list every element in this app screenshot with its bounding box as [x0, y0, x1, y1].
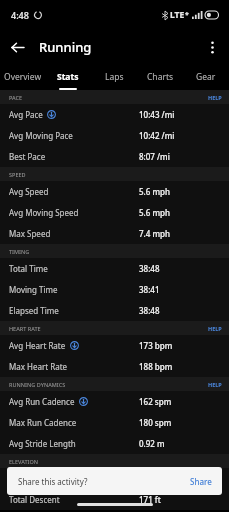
staticText: Avg Stride Length: [9, 438, 76, 449]
button[interactable]: Share: [190, 476, 212, 487]
staticText: PACE: [9, 94, 23, 101]
staticText: 8:07 /mi: [139, 151, 170, 162]
staticText: Avg Run Cadence: [9, 396, 75, 407]
staticText: Moving Time: [9, 284, 58, 295]
staticText: Overview: [4, 71, 42, 83]
staticText: 10:43 /mi: [139, 109, 175, 120]
staticText: Max Run Cadence: [9, 417, 77, 428]
button[interactable]: Elapsed Time: [0, 300, 229, 321]
staticText: 4:48: [11, 9, 29, 21]
staticText: HELP: [208, 94, 222, 101]
staticText: Laps: [105, 71, 124, 83]
staticText: ELEVATION: [9, 458, 39, 465]
staticText: *: [185, 10, 189, 20]
button[interactable]: HELP: [208, 381, 222, 388]
staticText: Gear: [196, 71, 216, 83]
staticText: RUNNING DYNAMICS: [9, 381, 66, 388]
staticText: 171 ft: [139, 494, 161, 505]
staticText: 38:41: [139, 284, 160, 295]
staticText: 38:48: [139, 305, 160, 316]
button[interactable]: Laps: [91, 64, 137, 90]
staticText: Total Descent: [9, 494, 60, 505]
button[interactable]: Back: [4, 34, 30, 60]
staticText: SPEED: [9, 171, 26, 178]
staticText: Total Ascent: [9, 473, 55, 484]
button[interactable]: Total Time: [0, 258, 229, 279]
staticText: Elapsed Time: [9, 305, 59, 316]
button[interactable]: Overview: [0, 64, 45, 90]
button[interactable]: Avg Heart Rate: [0, 335, 229, 356]
staticText: Avg Moving Speed: [9, 207, 79, 218]
staticText: Avg Speed: [9, 186, 49, 197]
staticText: LTE: [170, 9, 185, 21]
staticText: Avg Moving Pace: [9, 130, 73, 141]
staticText: 38:48: [139, 263, 160, 274]
staticText: 180 spm: [139, 417, 172, 428]
staticText: 5.6 mph: [139, 207, 170, 218]
staticText: 0.92 m: [139, 438, 165, 449]
staticText: 162 spm: [139, 396, 172, 407]
button[interactable]: HELP: [208, 94, 222, 101]
staticText: Max Speed: [9, 228, 51, 239]
staticText: 7.4 mph: [139, 228, 170, 239]
staticText: 173 bpm: [139, 340, 173, 351]
staticText: Avg Heart Rate: [9, 340, 66, 351]
button[interactable]: Share this activity?: [7, 467, 222, 495]
button[interactable]: Moving Time: [0, 279, 229, 300]
button[interactable]: Max Run Cadence: [0, 412, 229, 433]
staticText: HELP: [208, 381, 222, 388]
button[interactable]: Avg Pace: [0, 104, 229, 125]
staticText: 188 bpm: [139, 361, 173, 372]
button[interactable]: Avg Moving Speed: [0, 202, 229, 223]
other: Info: [70, 341, 79, 350]
button[interactable]: Charts: [137, 64, 183, 90]
button[interactable]: More options: [199, 34, 225, 60]
staticText: TIMING: [9, 248, 30, 255]
other: Info: [47, 110, 56, 119]
staticText: Running: [39, 38, 92, 56]
button[interactable]: Total Descent: [0, 489, 229, 510]
staticText: HEART RATE: [9, 325, 41, 332]
staticText: Charts: [147, 71, 174, 83]
staticText: Total Time: [9, 263, 48, 274]
button[interactable]: Avg Speed: [0, 181, 229, 202]
staticText: HELP: [208, 325, 222, 332]
button[interactable]: Max Speed: [0, 223, 229, 244]
button[interactable]: Avg Moving Pace: [0, 125, 229, 146]
button[interactable]: Max Heart Rate: [0, 356, 229, 377]
staticText: Share this activity?: [18, 476, 88, 487]
staticText: Share: [190, 476, 212, 487]
button[interactable]: HELP: [208, 325, 222, 332]
button[interactable]: Avg Run Cadence: [0, 391, 229, 412]
staticText: Stats: [57, 71, 79, 83]
staticText: 10:42 /mi: [139, 130, 175, 141]
staticText: Max Heart Rate: [9, 361, 68, 372]
other: Info: [79, 397, 88, 406]
button[interactable]: Total Ascent: [0, 468, 229, 489]
staticText: Best Pace: [9, 151, 46, 162]
button[interactable]: Stats: [45, 64, 91, 90]
staticText: Avg Pace: [9, 109, 43, 120]
button[interactable]: Gear: [183, 64, 229, 90]
button[interactable]: Avg Stride Length: [0, 433, 229, 454]
button[interactable]: Best Pace: [0, 146, 229, 167]
staticText: 5.6 mph: [139, 186, 170, 197]
